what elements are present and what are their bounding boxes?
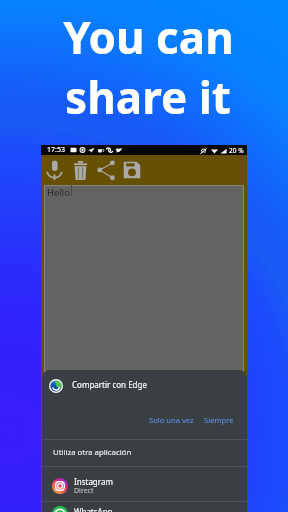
button[interactable]: Record audio xyxy=(41,155,67,185)
button[interactable]: Share xyxy=(93,155,119,185)
button[interactable]: Compartir con Edge xyxy=(42,370,247,401)
staticText: Compartir con Edge xyxy=(72,379,147,390)
staticText: 20 % xyxy=(229,146,244,155)
staticText: share it xyxy=(65,67,231,127)
staticText: Direct xyxy=(74,486,94,496)
staticText: Hello xyxy=(47,186,71,199)
staticText: Utiliza otra aplicación xyxy=(53,447,132,458)
button[interactable]: WhatsApp xyxy=(42,502,247,512)
button[interactable]: Utiliza otra aplicación xyxy=(42,440,247,466)
staticText: Instagram xyxy=(74,476,113,487)
button[interactable]: Delete xyxy=(67,155,93,185)
staticText: WhatsApp xyxy=(74,506,113,512)
staticText: You can xyxy=(63,7,234,67)
staticText: Siempre xyxy=(204,415,234,425)
button[interactable]: Siempre xyxy=(199,411,239,429)
button[interactable]: Instagram xyxy=(42,467,247,501)
button[interactable]: Save xyxy=(119,155,145,185)
button[interactable]: Solo una vez xyxy=(144,411,199,429)
staticText: Solo una vez xyxy=(149,415,194,425)
staticText: 17:53 xyxy=(47,145,65,155)
